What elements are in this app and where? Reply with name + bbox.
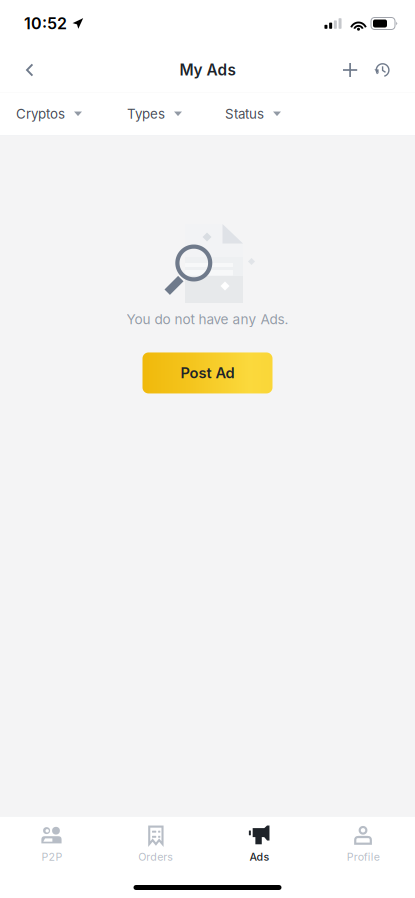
staticText: P2P <box>41 850 62 863</box>
button[interactable]: Post Ad <box>142 352 272 393</box>
staticText: Profile <box>347 850 380 863</box>
staticText: Cryptos <box>16 106 65 122</box>
button[interactable]: Back <box>8 46 52 94</box>
button[interactable]: Orders <box>104 816 208 869</box>
button[interactable]: Post new ad <box>334 46 366 94</box>
staticText: Types <box>127 106 165 122</box>
button[interactable]: Types <box>127 95 182 133</box>
staticText: Post Ad <box>180 364 234 382</box>
staticText: You do not have any Ads. <box>126 311 288 327</box>
button[interactable]: P2P <box>0 816 104 869</box>
button[interactable]: Status <box>225 95 281 133</box>
staticText: Ads <box>249 850 269 863</box>
button[interactable]: Ad history <box>366 46 398 94</box>
button[interactable]: Ads <box>207 816 311 869</box>
button[interactable]: Cryptos <box>16 95 82 133</box>
staticText: 10:52 <box>24 14 67 33</box>
staticText: My Ads <box>179 61 235 79</box>
staticText: Orders <box>138 850 173 863</box>
staticText: Status <box>225 106 264 122</box>
button[interactable]: Profile <box>311 816 415 869</box>
